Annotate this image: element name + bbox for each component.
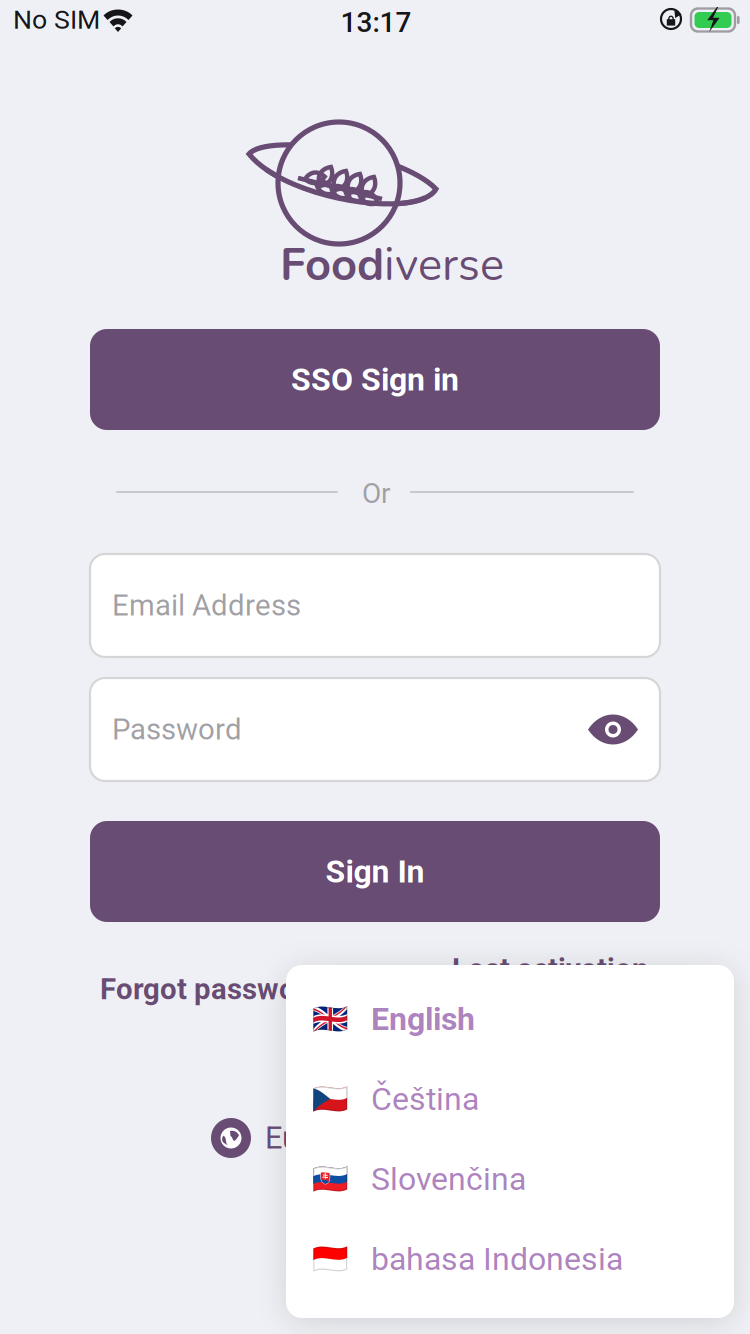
staticText: Forgot password xyxy=(100,972,323,1006)
staticText: 🇬🇧 xyxy=(312,1002,349,1036)
button[interactable]: Password xyxy=(90,678,660,781)
staticText: 🇨🇿 xyxy=(312,1082,349,1116)
button[interactable]: 🇨🇿 xyxy=(286,1059,734,1139)
button[interactable]: Forgot password xyxy=(100,972,323,1006)
button[interactable]: Lost activation xyxy=(452,952,648,986)
staticText: Slovenčina xyxy=(371,1160,526,1198)
staticText: 🇸🇰 xyxy=(312,1162,349,1196)
staticText: English xyxy=(371,1000,475,1038)
staticText: Lost activation xyxy=(452,952,648,986)
staticText: Email Address xyxy=(112,588,301,623)
staticText: Čeština xyxy=(371,1080,479,1118)
button[interactable]: 🇬🇧 xyxy=(286,979,734,1059)
button[interactable]: 🇸🇰 xyxy=(286,1139,734,1219)
button[interactable]: 🇮🇩 xyxy=(286,1219,734,1299)
staticText: SSO Sign in xyxy=(291,361,459,398)
staticText: Password xyxy=(112,712,242,747)
button[interactable]: Email Address xyxy=(90,554,660,657)
staticText: Or xyxy=(362,477,390,510)
staticText: 🇮🇩 xyxy=(312,1242,349,1276)
staticText: bahasa Indonesia xyxy=(371,1240,623,1278)
button[interactable]: Sign In xyxy=(90,821,660,922)
staticText: Europe xyxy=(265,1120,359,1156)
staticText: Sign In xyxy=(325,853,424,890)
staticText: No SIM xyxy=(13,4,100,35)
button[interactable]: SSO Sign in xyxy=(90,329,660,430)
staticText: Foodiverse xyxy=(280,235,504,295)
button[interactable]: Europe xyxy=(211,1118,359,1158)
staticText: 13:17 xyxy=(340,6,411,39)
